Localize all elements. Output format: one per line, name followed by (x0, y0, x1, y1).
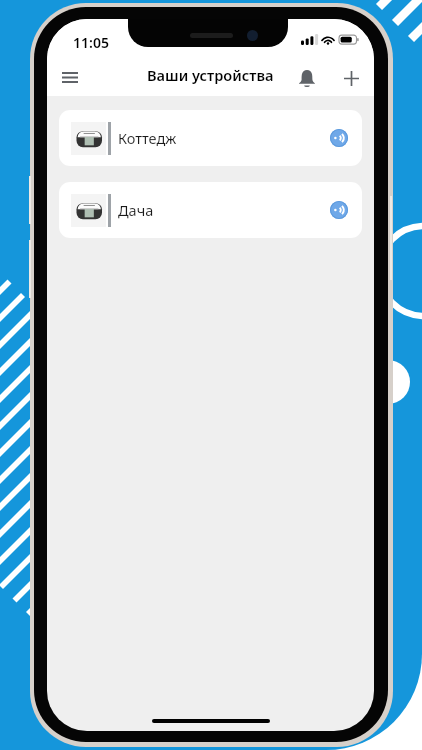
staticText: Дача (118, 200, 154, 220)
staticText: Ваши устройства (147, 65, 274, 85)
button[interactable]: Add device (323, 58, 365, 100)
button[interactable]: Notifications (277, 57, 319, 99)
staticText: Коттедж (118, 128, 177, 148)
button[interactable]: Signal (326, 197, 352, 223)
staticText: 11:05 (73, 33, 109, 52)
button[interactable]: Коттедж (59, 110, 362, 166)
button[interactable]: Signal (326, 125, 352, 151)
button[interactable]: Дача (59, 182, 362, 238)
button[interactable]: Menu (47, 55, 83, 97)
